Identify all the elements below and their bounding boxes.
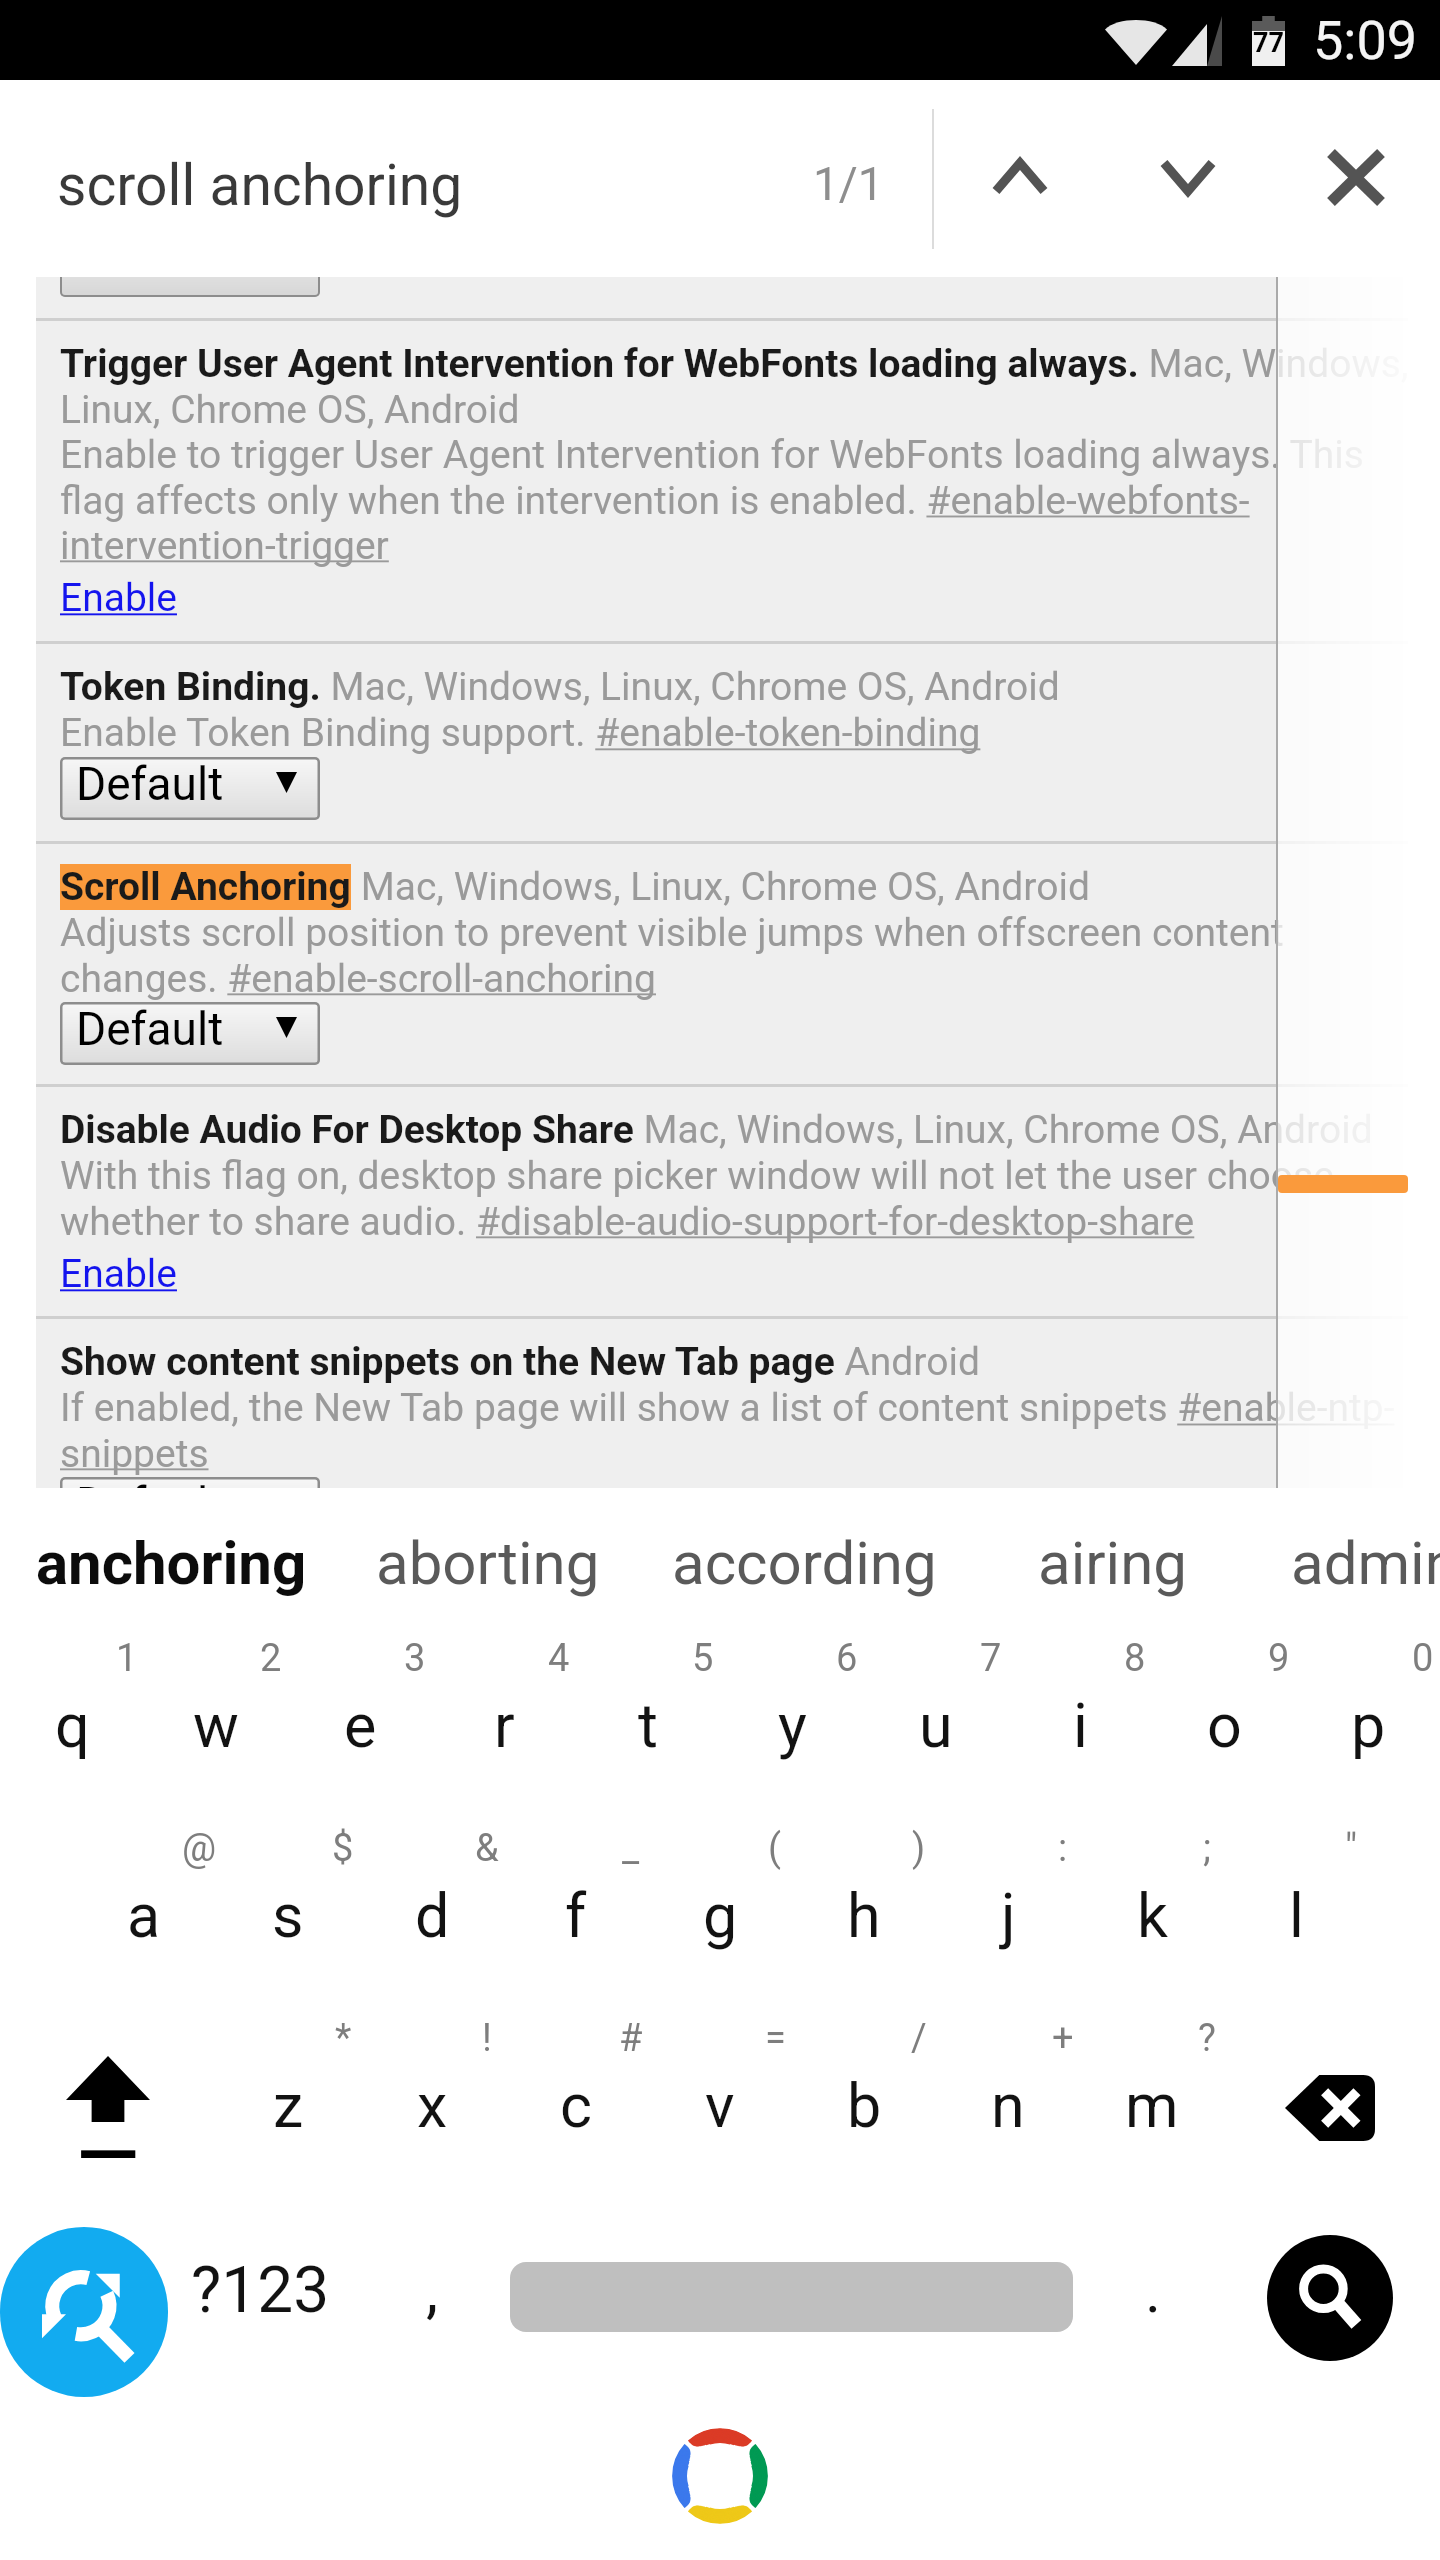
button[interactable]: /: [792, 1998, 936, 2188]
button[interactable]: 4: [432, 1618, 576, 1808]
button[interactable]: anchoring: [36, 1488, 307, 1638]
staticText: 2: [260, 1636, 282, 1681]
staticText: (: [768, 1826, 782, 1871]
staticText: /: [911, 2016, 927, 2061]
staticText: Adjusts scroll position to prevent visib…: [60, 910, 1422, 1001]
button[interactable]: 5: [576, 1618, 720, 1808]
button[interactable]: ;: [1080, 1808, 1224, 1998]
staticText: p: [1351, 1690, 1386, 1761]
button[interactable]: Default: [60, 757, 320, 820]
button[interactable]: Next result: [1123, 112, 1253, 242]
button[interactable]: aborting: [376, 1488, 600, 1638]
staticText: #: [619, 2016, 643, 2061]
button[interactable]: *: [216, 1998, 360, 2188]
button[interactable]: admin: [1291, 1488, 1440, 1638]
button[interactable]: =: [648, 1998, 792, 2188]
button[interactable]: @: [72, 1808, 216, 1998]
button[interactable]: &: [360, 1808, 504, 1998]
button[interactable]: Close find bar: [1291, 112, 1421, 242]
staticText: g: [703, 1880, 738, 1951]
staticText: With this flag on, desktop share picker …: [60, 1153, 1422, 1244]
button[interactable]: Shift: [0, 2012, 216, 2202]
button[interactable]: ,: [362, 2188, 502, 2418]
staticText: !: [482, 2016, 492, 2061]
staticText: 0: [1412, 1636, 1434, 1681]
staticText: u: [919, 1690, 953, 1761]
button[interactable]: 7: [864, 1618, 1008, 1808]
button[interactable]: 2: [144, 1618, 288, 1808]
button[interactable]: Enable: [60, 575, 177, 621]
staticText: o: [1207, 1690, 1242, 1761]
staticText: k: [1137, 1880, 1168, 1951]
staticText: d: [415, 1880, 450, 1951]
staticText: If enabled, the New Tab page will show a…: [60, 1385, 1422, 1476]
staticText: r: [494, 1690, 515, 1761]
staticText: 77: [1253, 27, 1284, 59]
staticText: :: [1058, 1826, 1068, 1871]
staticText: 1/1: [813, 157, 884, 211]
button[interactable]: 8: [1008, 1618, 1152, 1808]
button[interactable]: :: [936, 1808, 1080, 1998]
staticText: Mac, Windows, Linux, Chrome OS, Android: [351, 864, 1090, 910]
staticText: 7: [980, 1636, 1002, 1681]
button[interactable]: ): [792, 1808, 936, 1998]
staticText: i: [1073, 1690, 1088, 1761]
button[interactable]: Search: [1224, 2188, 1440, 2418]
button[interactable]: airing: [1038, 1488, 1187, 1638]
button[interactable]: $: [216, 1808, 360, 1998]
button[interactable]: ?123: [160, 2188, 360, 2418]
staticText: _: [622, 1826, 640, 1871]
button[interactable]: Enable: [60, 1251, 177, 1297]
staticText: 9: [1268, 1636, 1290, 1681]
button[interactable]: Space: [508, 2188, 1074, 2418]
staticText: x: [417, 2070, 448, 2141]
staticText: airing: [1038, 1528, 1187, 1598]
staticText: Token Binding. Mac, Windows, Linux, Chro…: [60, 664, 1060, 710]
staticText: e: [344, 1690, 377, 1761]
staticText: =: [765, 2016, 786, 2061]
staticText: *: [335, 2016, 352, 2061]
button[interactable]: 6: [720, 1618, 864, 1808]
staticText: 3: [404, 1636, 426, 1681]
button[interactable]: +: [936, 1998, 1080, 2188]
staticText: 5:09: [1313, 9, 1418, 72]
staticText: 6: [836, 1636, 858, 1681]
button[interactable]: according: [672, 1488, 937, 1638]
staticText: aborting: [376, 1528, 600, 1598]
staticText: .: [1145, 2255, 1162, 2326]
button[interactable]: Backspace: [1222, 2013, 1438, 2203]
button[interactable]: ?: [1080, 1998, 1224, 2188]
staticText: z: [273, 2070, 304, 2141]
staticText: ?: [1198, 2016, 1216, 2061]
button[interactable]: ": [1224, 1808, 1368, 1998]
staticText: a: [127, 1880, 161, 1951]
staticText: 4: [548, 1636, 570, 1681]
staticText: 1: [116, 1636, 138, 1681]
button[interactable]: _: [504, 1808, 648, 1998]
button[interactable]: .: [1078, 2188, 1228, 2418]
button[interactable]: Default: [60, 1477, 320, 1488]
staticText: Default: [76, 1477, 224, 1488]
button[interactable]: Switch input language: [0, 2188, 168, 2418]
staticText: f: [565, 1880, 587, 1951]
button[interactable]: !: [360, 1998, 504, 2188]
staticText: v: [705, 2070, 735, 2141]
staticText: Scroll Anchoring: [60, 864, 351, 910]
staticText: Default: [76, 1002, 224, 1056]
staticText: &: [475, 1826, 499, 1871]
staticText: Enable to trigger User Agent Interventio…: [60, 432, 1422, 568]
staticText: +: [1052, 2016, 1074, 2061]
staticText: $: [332, 1826, 354, 1871]
button[interactable]: Previous result: [955, 112, 1085, 242]
button[interactable]: (: [648, 1808, 792, 1998]
button[interactable]: 0: [1296, 1618, 1440, 1808]
button[interactable]: 9: [1152, 1618, 1296, 1808]
button[interactable]: Default: [60, 1002, 320, 1065]
button[interactable]: 1: [0, 1618, 144, 1808]
button[interactable]: 3: [288, 1618, 432, 1808]
staticText: c: [560, 2070, 592, 2141]
staticText: ": [1345, 1826, 1358, 1871]
staticText: w: [193, 1690, 239, 1761]
button[interactable]: #: [504, 1998, 648, 2188]
staticText: @: [182, 1826, 217, 1871]
